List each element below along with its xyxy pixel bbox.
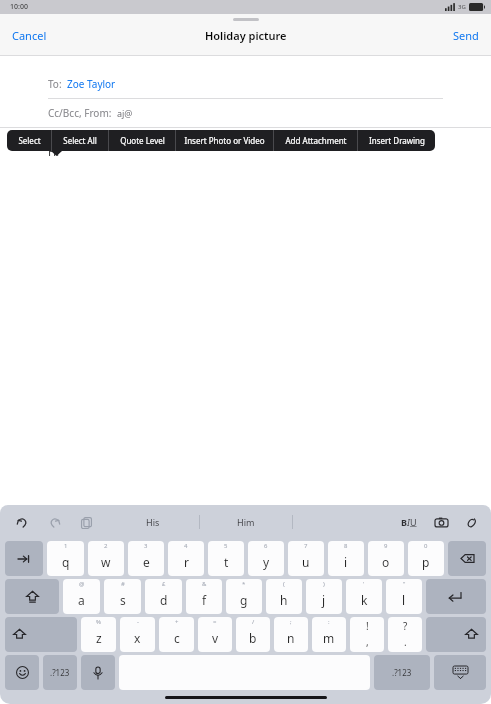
- staticText: i: [344, 554, 348, 570]
- staticText: 4: [184, 542, 188, 550]
- staticText: Select All: [63, 135, 97, 146]
- button[interactable]: 3: [128, 541, 164, 576]
- button[interactable]: %: [81, 617, 116, 652]
- button[interactable]: Shift: [426, 617, 486, 652]
- staticText: B: [401, 516, 407, 528]
- button[interactable]: #: [104, 579, 141, 614]
- button[interactable]: Hide keyboard: [434, 655, 486, 690]
- staticText: Zoe Taylor: [67, 77, 116, 91]
- button[interactable]: 2: [88, 541, 124, 576]
- staticText: g: [240, 592, 248, 608]
- button[interactable]: 0: [408, 541, 444, 576]
- button[interactable]: 8: [328, 541, 364, 576]
- staticText: Cc/Bcc, From:: [48, 106, 112, 120]
- staticText: n: [287, 630, 295, 646]
- button[interactable]: Tab: [5, 541, 43, 576]
- button[interactable]: Quote Level: [109, 130, 175, 151]
- button[interactable]: ": [386, 579, 422, 614]
- staticText: ;: [290, 618, 292, 626]
- button[interactable]: -: [120, 617, 155, 652]
- button[interactable]: 9: [368, 541, 404, 576]
- staticText: j: [322, 592, 326, 608]
- button[interactable]: &: [186, 579, 222, 614]
- staticText: Quote Level: [120, 135, 165, 146]
- button[interactable]: Select All: [52, 130, 108, 151]
- button[interactable]: ;: [274, 617, 308, 652]
- button[interactable]: Select: [7, 130, 51, 151]
- staticText: U: [410, 516, 417, 528]
- button[interactable]: .?123: [374, 655, 430, 690]
- staticText: p: [422, 554, 430, 570]
- button[interactable]: =: [198, 617, 232, 652]
- button[interactable]: 5: [208, 541, 244, 576]
- button[interactable]: ): [306, 579, 342, 614]
- button[interactable]: Send: [441, 20, 491, 51]
- staticText: y: [263, 554, 270, 570]
- staticText: k: [361, 592, 368, 608]
- button[interactable]: 6: [248, 541, 284, 576]
- button[interactable]: Add Attachment: [274, 130, 357, 151]
- button[interactable]: /: [236, 617, 270, 652]
- staticText: d: [160, 592, 168, 608]
- button[interactable]: Redo: [44, 512, 64, 532]
- staticText: ?: [403, 619, 408, 633]
- button[interactable]: £: [145, 579, 182, 614]
- staticText: Insert Photo or Video: [184, 135, 265, 146]
- staticText: a: [78, 592, 85, 608]
- staticText: Him: [237, 516, 255, 528]
- button[interactable]: .?123: [43, 655, 77, 690]
- button[interactable]: *: [226, 579, 262, 614]
- staticText: .?123: [50, 667, 70, 678]
- staticText: 6: [264, 542, 268, 550]
- staticText: 8: [344, 542, 348, 550]
- button[interactable]: His: [107, 516, 199, 528]
- button[interactable]: !: [350, 617, 384, 652]
- staticText: s: [120, 592, 126, 608]
- staticText: :: [328, 618, 330, 626]
- staticText: -: [137, 618, 139, 626]
- button[interactable]: B: [397, 512, 421, 532]
- staticText: 0: [424, 542, 428, 550]
- button[interactable]: 4: [168, 541, 204, 576]
- button[interactable]: 7: [288, 541, 324, 576]
- button[interactable]: @: [63, 579, 100, 614]
- staticText: 3G: [458, 3, 466, 11]
- staticText: u: [302, 554, 310, 570]
- staticText: .?123: [392, 667, 412, 678]
- button[interactable]: Him: [200, 516, 292, 528]
- button[interactable]: Camera: [431, 512, 451, 532]
- button[interactable]: Dictate: [81, 655, 115, 690]
- staticText: I: [407, 516, 410, 528]
- button[interactable]: ?: [388, 617, 422, 652]
- button[interactable]: Cc/Bcc, From:: [0, 99, 491, 127]
- button[interactable]: Insert Drawing: [358, 130, 435, 151]
- staticText: His: [146, 516, 160, 528]
- button[interactable]: Backspace: [448, 541, 486, 576]
- button[interactable]: Shift: [5, 617, 77, 652]
- staticText: +: [175, 618, 179, 626]
- staticText: Send: [453, 28, 479, 43]
- button[interactable]: Undo: [12, 512, 32, 532]
- button[interactable]: (: [266, 579, 302, 614]
- button[interactable]: Shift: [5, 579, 59, 614]
- button[interactable]: Attach: [461, 512, 481, 532]
- button[interactable]: Emoji: [5, 655, 39, 690]
- staticText: /: [252, 618, 255, 626]
- button[interactable]: Cancel: [0, 20, 59, 51]
- button[interactable]: To:: [0, 70, 491, 98]
- button[interactable]: ': [346, 579, 382, 614]
- button[interactable]: +: [159, 617, 194, 652]
- staticText: £: [162, 580, 166, 588]
- button[interactable]: Paste: [76, 512, 96, 532]
- button[interactable]: Return: [426, 579, 486, 614]
- staticText: 9: [384, 542, 388, 550]
- staticText: =: [213, 618, 217, 626]
- staticText: w: [101, 554, 111, 570]
- button[interactable]: Insert Photo or Video: [176, 130, 273, 151]
- staticText: c: [174, 630, 180, 646]
- staticText: *: [242, 580, 246, 588]
- staticText: o: [382, 554, 390, 570]
- button[interactable]: :: [312, 617, 346, 652]
- button[interactable]: 1: [47, 541, 84, 576]
